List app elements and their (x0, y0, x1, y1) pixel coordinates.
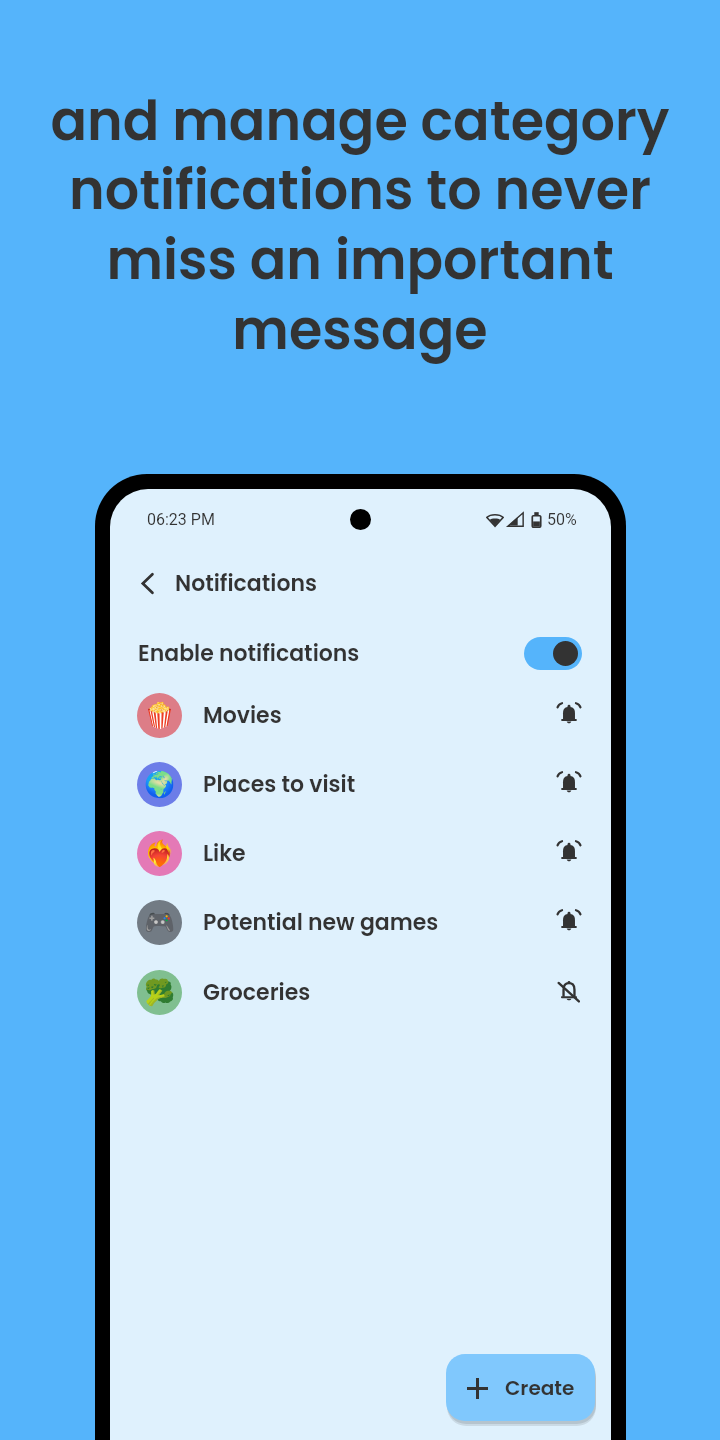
staticText: ❤️‍🔥 (144, 839, 176, 868)
staticText: Like (203, 838, 246, 869)
button[interactable]: Notifications on (546, 831, 592, 877)
staticText: Notifications (175, 568, 317, 599)
button[interactable]: Create (446, 1354, 595, 1421)
staticText: Places to visit (203, 769, 356, 800)
button[interactable]: Enable notifications (110, 623, 611, 683)
button[interactable]: Notifications on (546, 762, 592, 808)
staticText: 06:23 PM (147, 510, 215, 529)
staticText: Create (505, 1374, 575, 1402)
staticText: 🌍 (144, 770, 176, 799)
staticText: 🎮 (144, 908, 176, 937)
staticText: 🍿 (144, 701, 176, 730)
staticText: Groceries (203, 977, 311, 1008)
button[interactable]: Back (128, 564, 166, 602)
staticText: 50% (547, 510, 577, 529)
button[interactable]: Back (110, 555, 611, 611)
staticText: Potential new games (203, 907, 439, 938)
staticText: Movies (203, 700, 282, 731)
button[interactable]: Notifications on (546, 900, 592, 946)
button[interactable]: 🍿 (110, 681, 611, 750)
button[interactable]: 🎮 (110, 888, 611, 957)
staticText: 🥦 (144, 978, 176, 1007)
button[interactable]: Notifications on (546, 693, 592, 739)
button[interactable]: 🌍 (110, 750, 611, 819)
button[interactable]: Notifications off (546, 970, 592, 1016)
button[interactable]: ❤️‍🔥 (110, 819, 611, 888)
staticText: and manage category notifications to nev… (45, 83, 675, 368)
staticText: Enable notifications (138, 638, 360, 669)
button[interactable]: 🥦 (110, 958, 611, 1027)
